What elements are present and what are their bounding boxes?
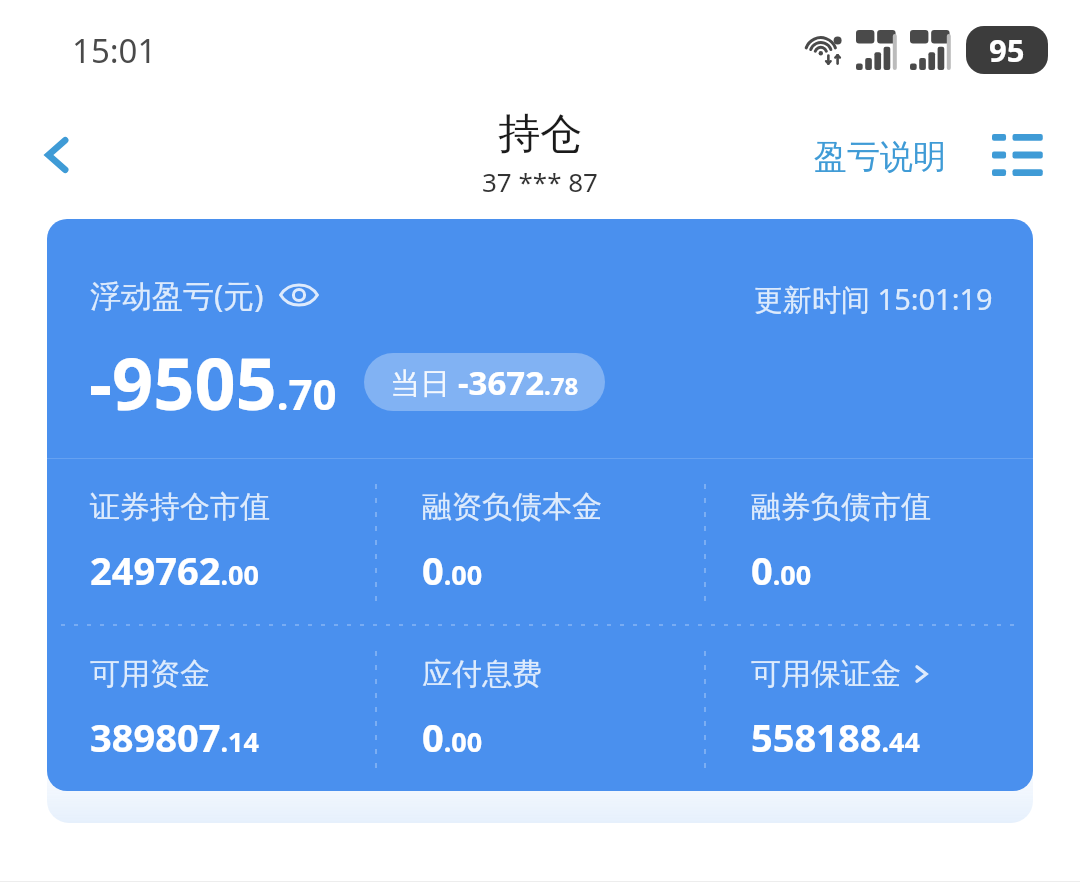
staticText: 证券持仓市值	[90, 488, 270, 526]
staticText: 浮动盈亏(元)	[90, 274, 264, 316]
button[interactable]: Back	[20, 117, 96, 193]
staticText: 389807.14	[90, 711, 259, 763]
button[interactable]: 盈亏说明	[808, 128, 952, 186]
staticText: 融资负债本金	[422, 488, 602, 526]
staticText: 可用保证金	[751, 655, 901, 693]
staticText: 融券负债市值	[751, 488, 931, 526]
staticText: 盈亏说明	[814, 136, 946, 178]
staticText: 应付息费	[422, 655, 542, 693]
button[interactable]: 当日	[364, 353, 605, 411]
staticText: 更新时间 15:01:19	[754, 279, 993, 319]
staticText: 可用资金	[90, 655, 210, 693]
staticText: 0.00	[751, 544, 812, 596]
staticText: 249762.00	[90, 544, 259, 596]
staticText: 0.00	[422, 544, 483, 596]
staticText: -9505.70	[89, 333, 337, 431]
staticText: -3672.78	[458, 360, 579, 405]
button[interactable]: Toggle visibility	[278, 274, 320, 316]
button[interactable]: 浮动盈亏(元)	[47, 219, 1033, 791]
staticText: 95	[989, 29, 1025, 71]
staticText: 15:01	[72, 28, 157, 73]
staticText: 558188.44	[751, 711, 920, 763]
button[interactable]: 可用保证金	[751, 626, 1033, 791]
button[interactable]: List view	[982, 119, 1056, 193]
staticText: 持仓	[498, 108, 582, 161]
staticText: 0.00	[422, 711, 483, 763]
staticText: 37 *** 87	[482, 164, 598, 199]
staticText: 当日	[390, 362, 458, 403]
